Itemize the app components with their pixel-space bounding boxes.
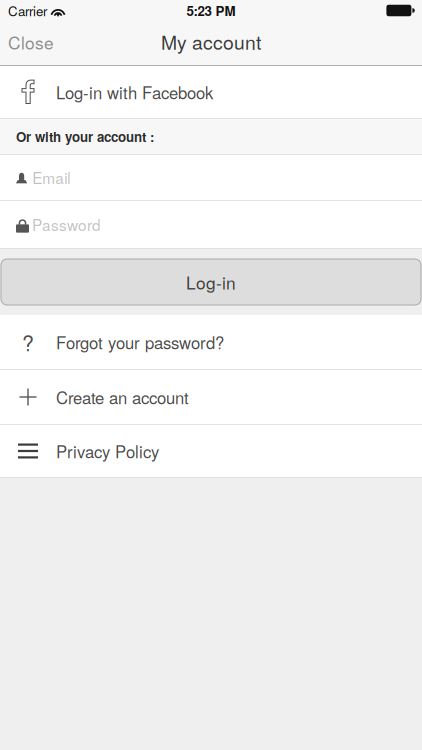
staticText: Forgot your password? xyxy=(56,330,224,354)
button[interactable]: Create an account xyxy=(0,370,422,424)
staticText: 5:23 PM xyxy=(186,1,235,20)
staticText: Privacy Policy xyxy=(56,439,159,463)
staticText: Log-in with Facebook xyxy=(56,80,213,104)
staticText: ? xyxy=(22,327,34,357)
staticText: Close xyxy=(8,30,54,54)
button[interactable]: Close xyxy=(0,21,68,66)
staticText: Email xyxy=(32,166,70,188)
staticText: Password xyxy=(32,213,101,235)
staticText: My account xyxy=(161,28,261,55)
button[interactable]: Privacy Policy xyxy=(0,425,422,477)
staticText: Create an account xyxy=(56,385,189,409)
button[interactable]: Email xyxy=(0,155,422,200)
button[interactable]: ? xyxy=(0,315,422,369)
button[interactable]: Log-in with Facebook xyxy=(0,66,422,118)
button[interactable]: Log-in xyxy=(1,259,421,305)
staticText: Carrier xyxy=(8,1,47,20)
staticText: Log-in xyxy=(186,270,236,294)
staticText: Or with your account : xyxy=(16,127,154,146)
button[interactable]: Password xyxy=(0,201,422,248)
